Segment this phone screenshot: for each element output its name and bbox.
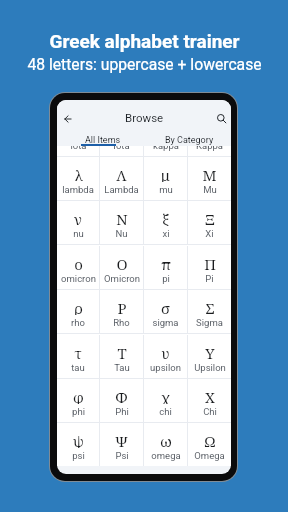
staticText: Greek alphabet trainer [49,30,240,52]
staticText: Σ [205,298,215,315]
button[interactable]: φ [57,379,99,422]
staticText: Π [204,254,216,271]
button[interactable]: Ρ [100,290,143,333]
button[interactable]: Search [212,109,231,129]
staticText: lambda [62,184,94,195]
staticText: ν [74,209,82,226]
button[interactable]: All Items [59,135,146,150]
staticText: Ω [204,431,216,448]
staticText: nu [73,228,84,239]
button[interactable]: By Category [146,135,231,150]
staticText: Ο [116,254,128,271]
button[interactable]: κ [144,146,187,156]
staticText: kappa [153,146,179,151]
button[interactable]: Χ [188,379,231,422]
button[interactable]: λ [57,157,99,200]
button[interactable]: Φ [100,379,143,422]
staticText: ρ [74,298,83,315]
button[interactable]: Ι [100,146,143,156]
button[interactable]: Ξ [188,201,231,244]
staticText: By Category [165,135,214,146]
button[interactable]: Υ [188,335,231,378]
button[interactable]: Σ [188,290,231,333]
staticText: mu [159,184,173,195]
button[interactable]: ρ [57,290,99,333]
staticText: χ [161,387,170,404]
staticText: Pi [205,273,214,284]
staticText: Omega [194,450,225,461]
staticText: υ [161,343,170,360]
staticText: sigma [152,317,179,328]
button[interactable]: Ν [100,201,143,244]
staticText: rho [71,317,85,328]
staticText: Omicron [104,273,140,284]
staticText: tau [71,362,85,373]
button[interactable]: ν [57,201,99,244]
staticText: μ [161,165,170,182]
staticText: ξ [162,209,169,226]
staticText: Xi [205,228,214,239]
staticText: π [161,254,171,271]
staticText: Phi [115,406,129,417]
staticText: omicron [61,273,96,284]
staticText: Φ [115,387,128,404]
button[interactable]: ο [57,246,99,289]
staticText: 48 letters: uppercase + lowercase [27,55,262,73]
button[interactable]: υ [144,335,187,378]
button[interactable]: Μ [188,157,231,200]
button[interactable]: Ψ [100,423,143,466]
staticText: iota [70,146,87,151]
staticText: Υ [205,343,215,360]
staticText: Μ [202,165,217,182]
button[interactable]: Ω [188,423,231,466]
staticText: All Items [85,135,121,146]
staticText: Chi [203,406,217,417]
staticText: omega [151,450,181,461]
staticText: Rho [113,317,130,328]
staticText: ψ [73,431,84,448]
button[interactable]: π [144,246,187,289]
staticText: Tau [114,362,130,373]
button[interactable]: χ [144,379,187,422]
button[interactable]: ω [144,423,187,466]
staticText: Ψ [115,431,128,448]
button[interactable]: σ [144,290,187,333]
staticText: Ρ [117,298,127,315]
staticText: xi [162,228,170,239]
button[interactable]: ι [57,146,99,156]
staticText: psi [72,450,85,461]
staticText: Ξ [205,209,215,226]
button[interactable]: Π [188,246,231,289]
staticText: φ [73,387,84,404]
button[interactable]: μ [144,157,187,200]
button[interactable]: ξ [144,201,187,244]
staticText: Psi [115,450,129,461]
staticText: chi [159,406,172,417]
staticText: ο [74,254,83,271]
staticText: Τ [117,343,127,360]
button[interactable]: Λ [100,157,143,200]
staticText: Browse [125,111,164,124]
staticText: ω [160,431,172,448]
staticText: Sigma [196,317,223,328]
staticText: σ [161,298,170,315]
button[interactable]: ψ [57,423,99,466]
staticText: Upsilon [194,362,226,373]
staticText: Lambda [104,184,139,195]
staticText: τ [74,343,82,360]
button[interactable]: Κ [188,146,231,156]
staticText: Mu [203,184,217,195]
staticText: λ [74,165,83,182]
staticText: Iota [113,146,130,151]
button[interactable]: Τ [100,335,143,378]
staticText: Ν [116,209,128,226]
staticText: Λ [116,165,127,182]
button[interactable]: Ο [100,246,143,289]
staticText: phi [72,406,85,417]
button[interactable]: Back [58,109,78,129]
staticText: Χ [205,387,215,404]
staticText: upsilon [150,362,181,373]
button[interactable]: τ [57,335,99,378]
staticText: Nu [115,228,128,239]
staticText: Kappa [196,146,223,151]
